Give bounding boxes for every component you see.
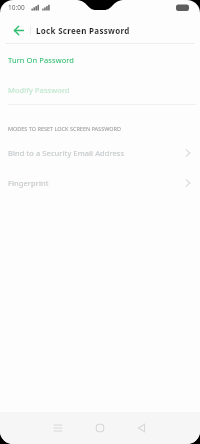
staticText: Fingerprint <box>8 178 49 188</box>
button[interactable] <box>48 418 68 438</box>
button[interactable]: Turn On Password <box>0 44 200 76</box>
staticText: MODES TO RESET LOCK SCREEN PASSWORD <box>8 125 121 132</box>
staticText: 10:00 <box>8 3 25 12</box>
staticText: Turn On Password <box>8 55 75 65</box>
button[interactable]: Modify Password <box>0 76 200 104</box>
button[interactable] <box>132 418 152 438</box>
button[interactable] <box>90 418 110 438</box>
staticText: Bind to a Security Email Address <box>8 148 125 158</box>
staticText: Lock Screen Password <box>36 25 130 36</box>
staticText: Modify Password <box>8 85 70 95</box>
button[interactable] <box>11 22 28 39</box>
button[interactable]: Bind to a Security Email Address <box>0 138 200 168</box>
button[interactable]: Fingerprint <box>0 168 200 198</box>
